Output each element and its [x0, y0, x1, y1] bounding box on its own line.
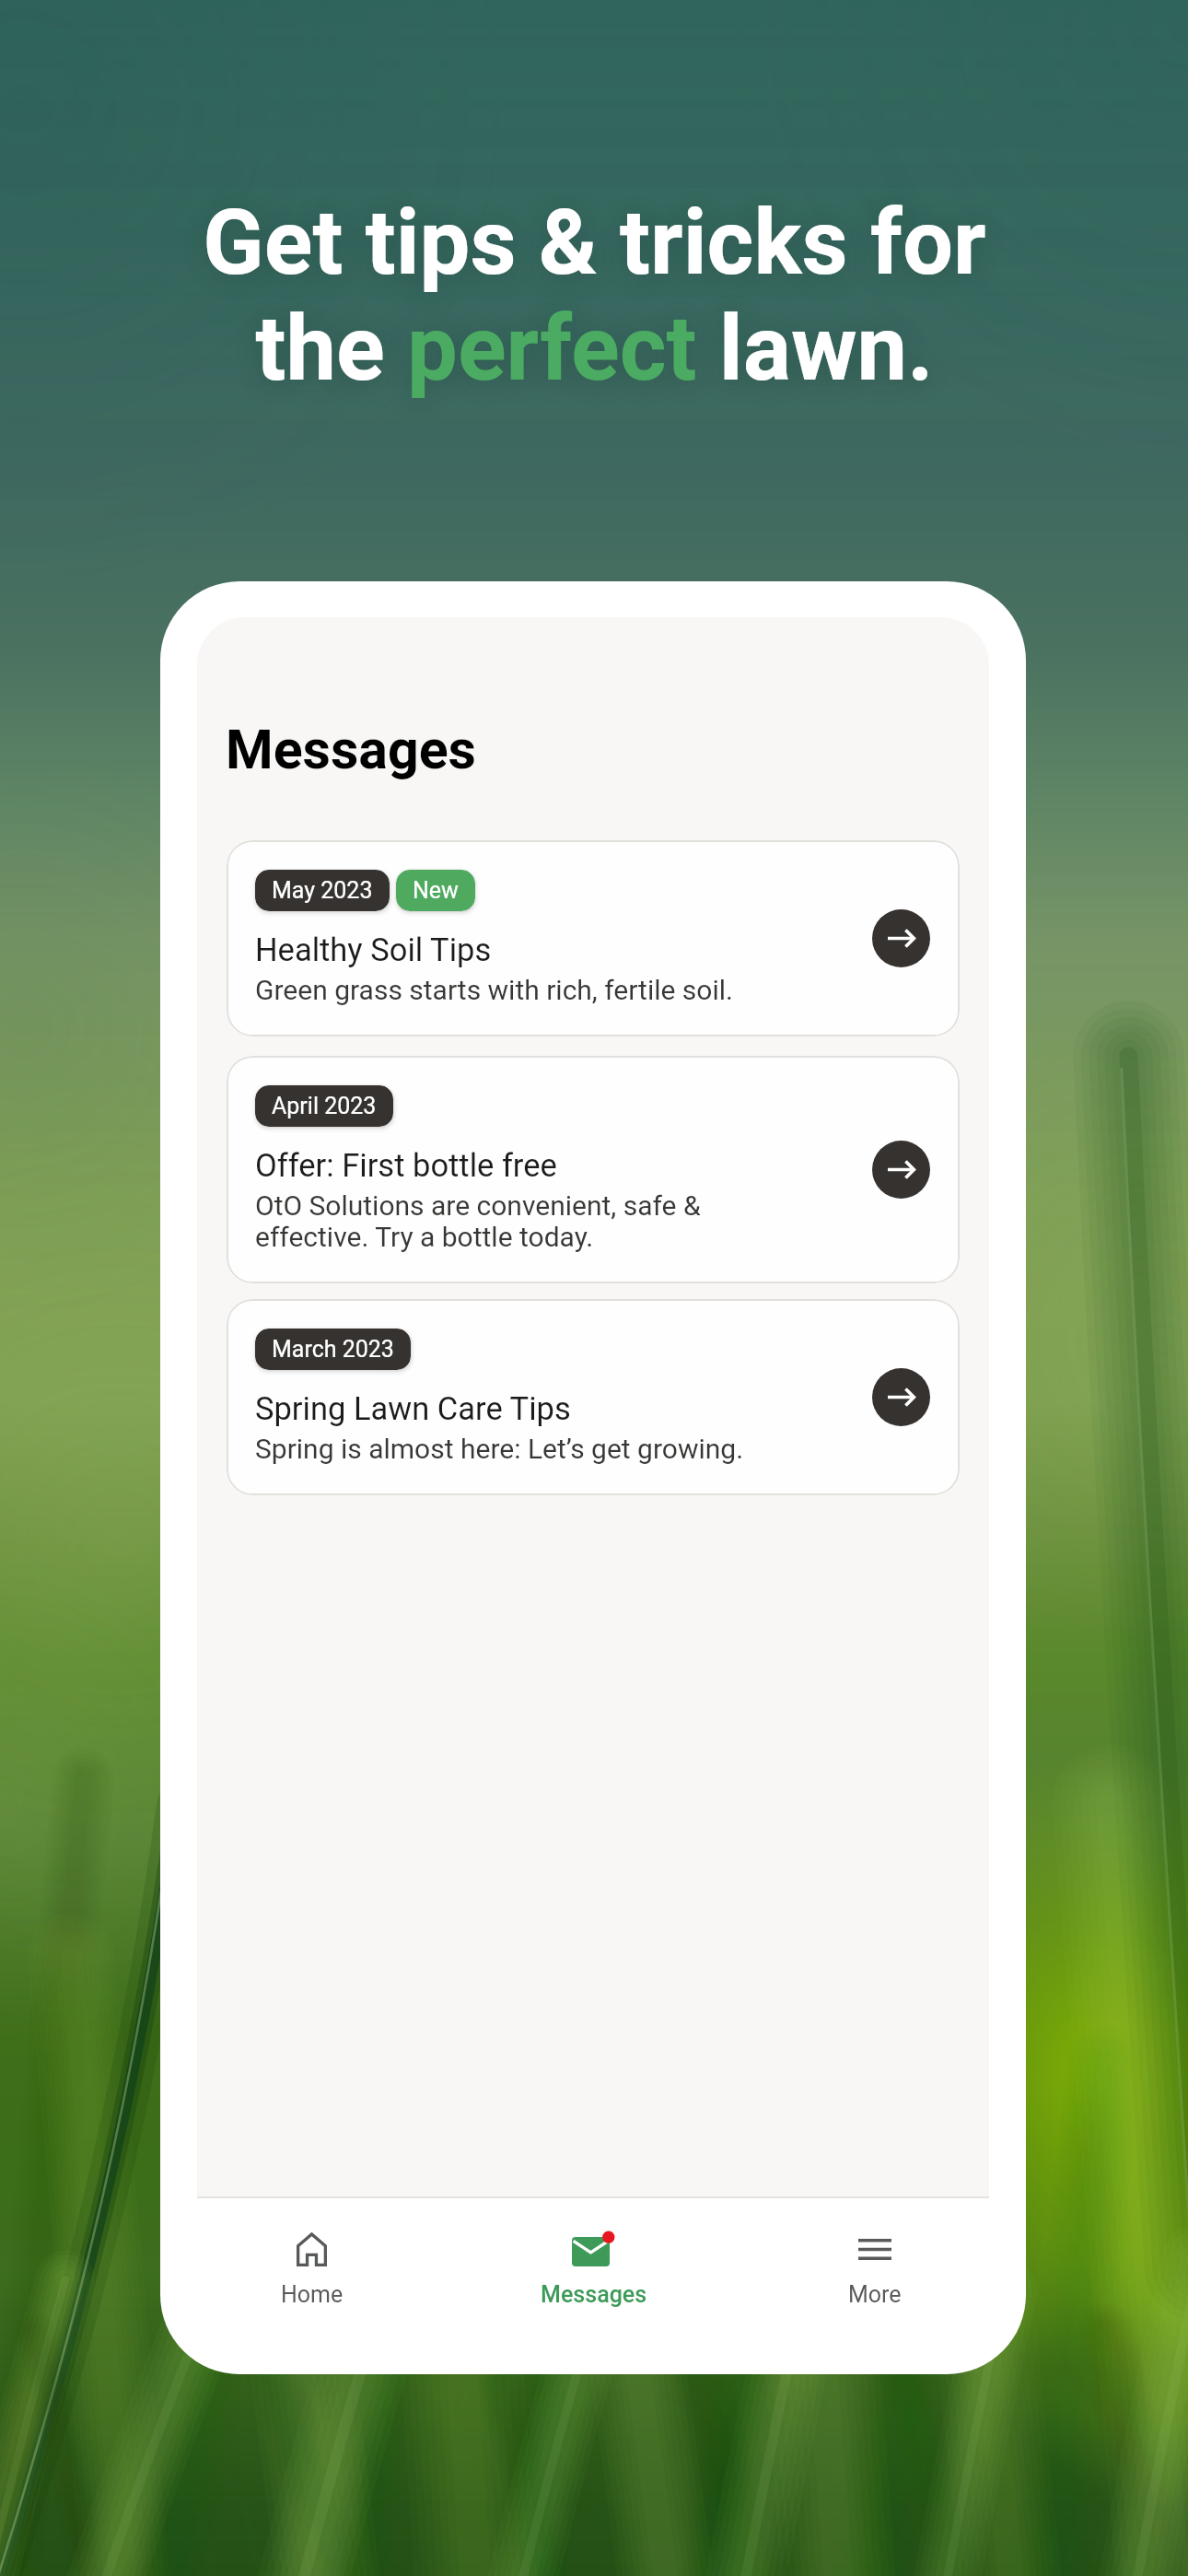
button[interactable]: Open message: [872, 909, 930, 967]
staticText: More: [848, 2281, 902, 2308]
button[interactable]: May 2023: [227, 840, 960, 1036]
button[interactable]: April 2023: [227, 1056, 960, 1283]
staticText: Offer: First bottle free: [255, 1147, 557, 1184]
staticText: Healthy Soil Tips: [255, 931, 492, 968]
staticText: Spring is almost here: Let’s get growing…: [255, 1433, 744, 1465]
staticText: Messages: [226, 718, 476, 781]
staticText: Messages: [541, 2281, 647, 2308]
staticText: Green grass starts with rich, fertile so…: [255, 974, 733, 1006]
staticText: Home: [281, 2281, 344, 2308]
button[interactable]: Open message: [872, 1141, 930, 1199]
button[interactable]: More: [760, 2231, 989, 2308]
staticText: April 2023: [272, 1093, 377, 1119]
staticText: Spring Lawn Care Tips: [255, 1390, 571, 1427]
staticText: May 2023: [272, 877, 373, 904]
button[interactable]: March 2023: [227, 1299, 960, 1495]
button[interactable]: Open message: [872, 1368, 930, 1426]
staticText: Get tips & tricks for the perfect lawn.: [203, 191, 986, 402]
staticText: OtO Solutions are convenient, safe & eff…: [255, 1189, 781, 1253]
button[interactable]: Home: [197, 2231, 426, 2308]
staticText: New: [413, 877, 459, 904]
button[interactable]: Messages: [479, 2231, 708, 2308]
staticText: March 2023: [272, 1336, 394, 1363]
